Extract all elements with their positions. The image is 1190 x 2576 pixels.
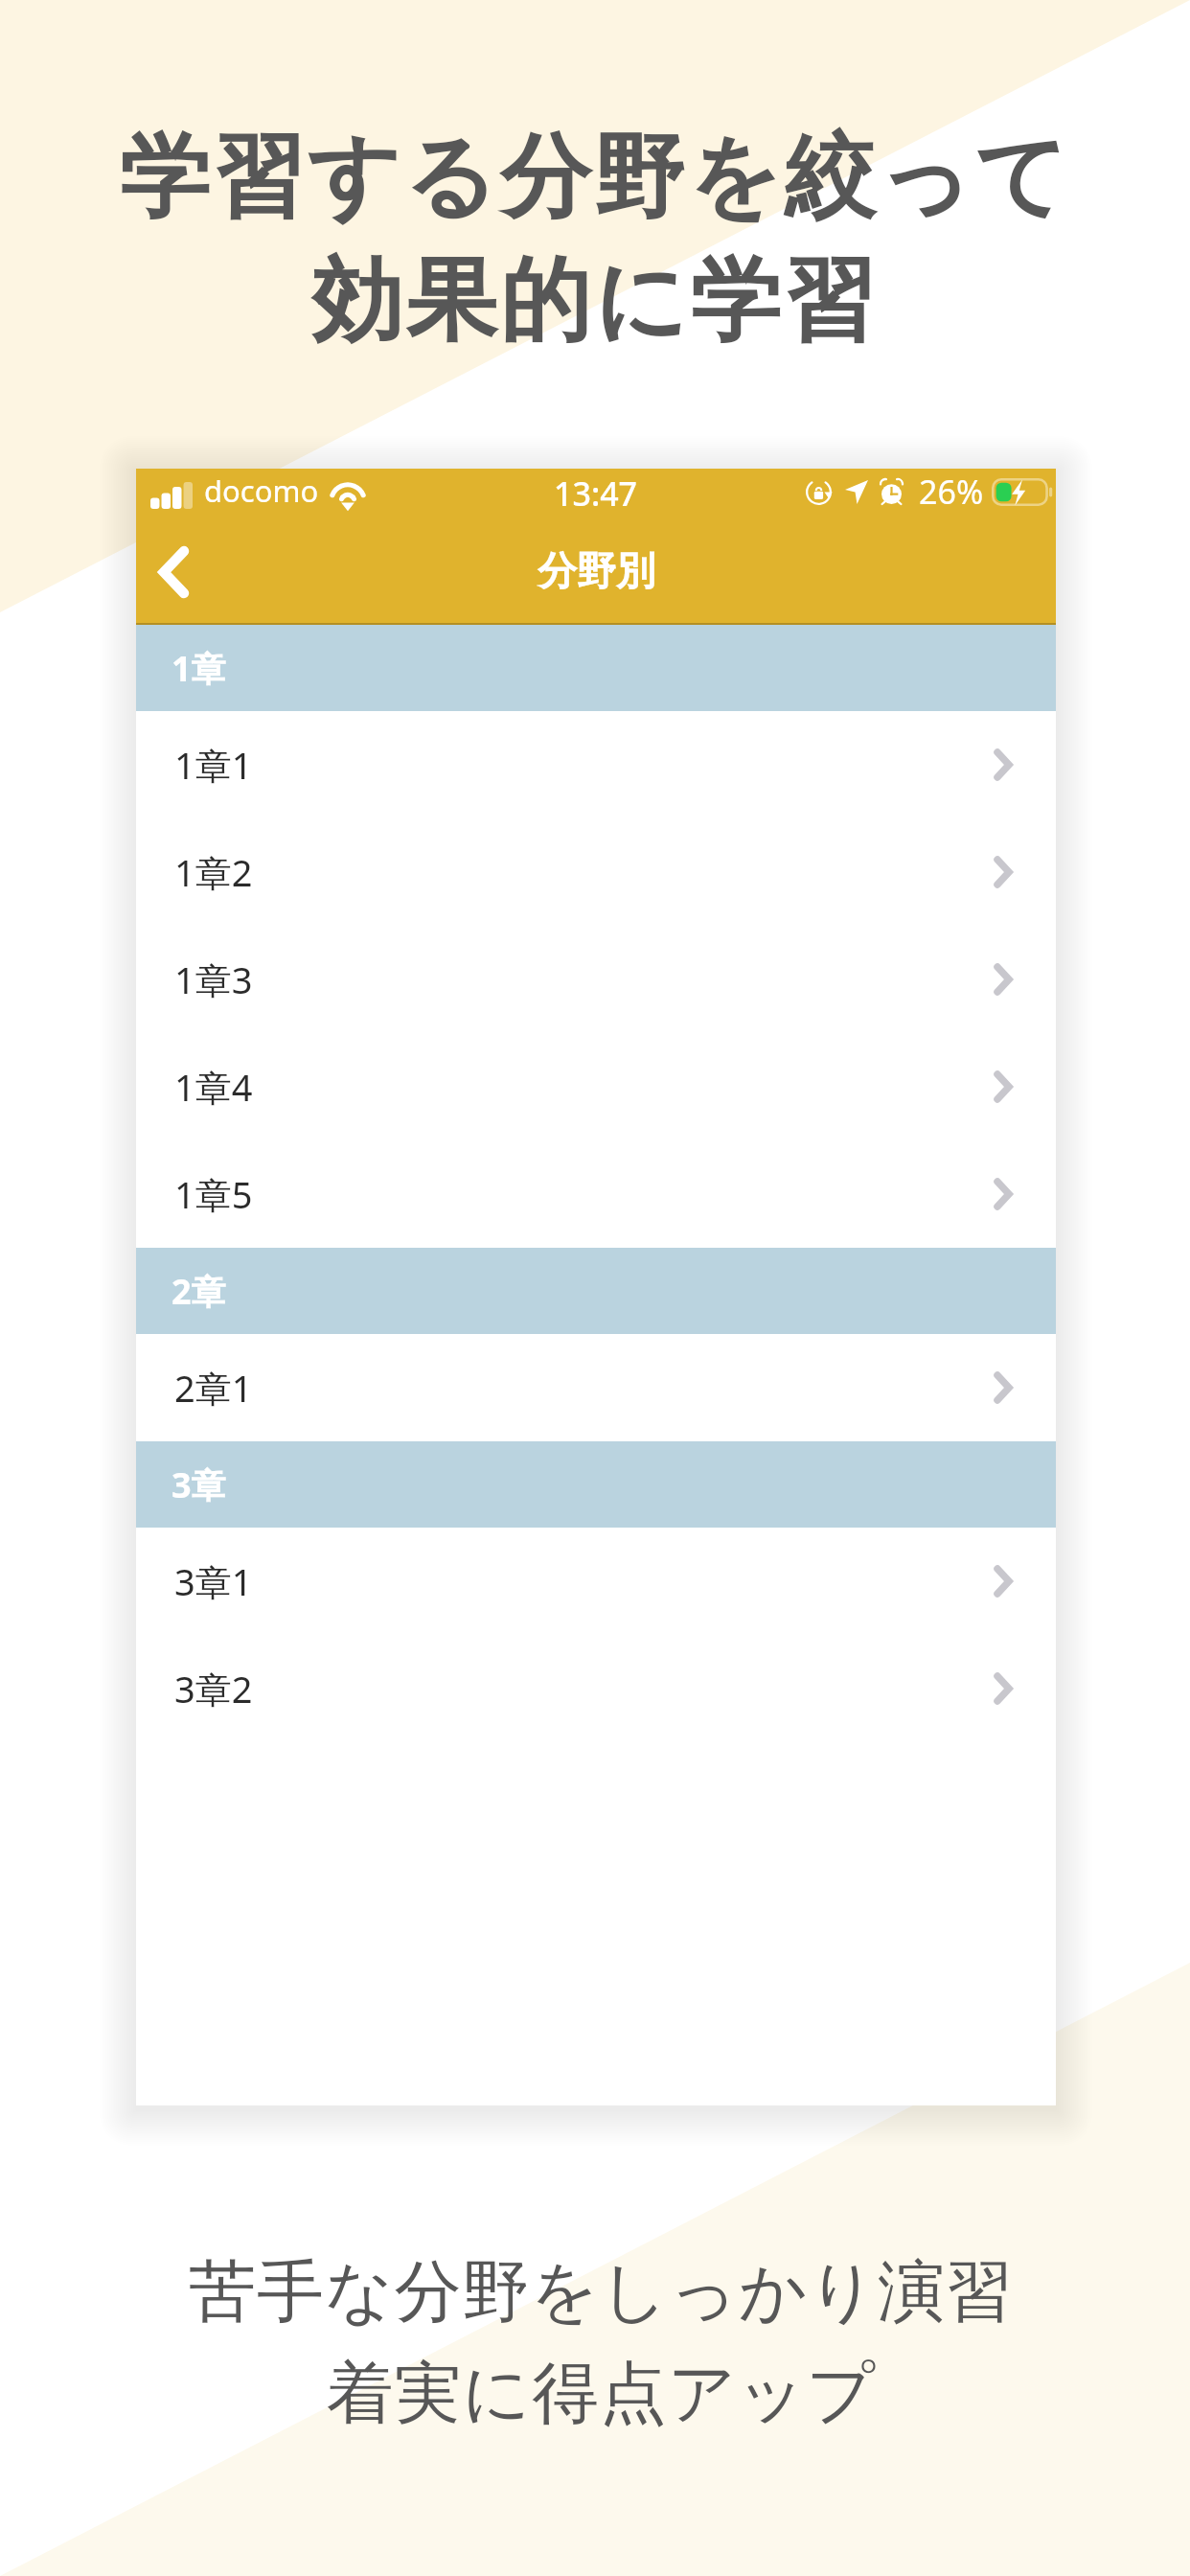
staticText: 2章 (172, 1268, 226, 1315)
staticText: 1章 (172, 645, 226, 692)
staticText: 分野別 (538, 547, 655, 597)
button[interactable]: 1章3 (136, 926, 1056, 1033)
button[interactable]: 1章2 (136, 818, 1056, 926)
staticText: 学習する分野を絞って 効果的に学習 (119, 121, 1071, 359)
staticText: 1章5 (174, 1169, 253, 1219)
staticText: 2章1 (174, 1363, 253, 1413)
button[interactable]: 1章5 (136, 1140, 1056, 1248)
staticText: 13:47 (554, 471, 638, 516)
staticText: 苦手な分野をしっかり演習 着実に得点アップ (189, 2250, 1014, 2436)
staticText: 1章4 (174, 1062, 253, 1112)
button[interactable]: 1章1 (136, 711, 1056, 818)
staticText: 1章2 (174, 847, 253, 897)
staticText: 3章1 (174, 1556, 253, 1606)
staticText: 1章3 (174, 954, 253, 1004)
button[interactable]: Back (136, 518, 211, 625)
staticText: 1章1 (174, 740, 253, 790)
button[interactable]: 3章1 (136, 1528, 1056, 1635)
staticText: 3章 (172, 1461, 226, 1508)
staticText: 3章2 (174, 1664, 253, 1713)
button[interactable]: 2章1 (136, 1334, 1056, 1441)
staticText: 26% (919, 470, 984, 514)
button[interactable]: 3章2 (136, 1635, 1056, 1742)
staticText: docomo (204, 471, 319, 511)
button[interactable]: 1章4 (136, 1033, 1056, 1140)
